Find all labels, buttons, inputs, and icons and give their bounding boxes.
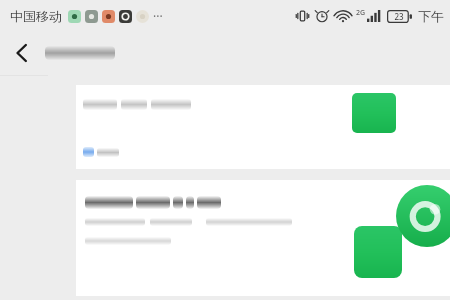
button[interactable]	[76, 85, 450, 169]
staticText: 2G	[356, 8, 366, 18]
staticText: ···	[153, 8, 163, 24]
button[interactable]	[76, 180, 450, 296]
staticText: 中国移动	[10, 8, 62, 24]
button[interactable]: Back	[0, 31, 44, 75]
staticText: 23	[394, 11, 404, 22]
staticText: 下午	[418, 8, 444, 24]
